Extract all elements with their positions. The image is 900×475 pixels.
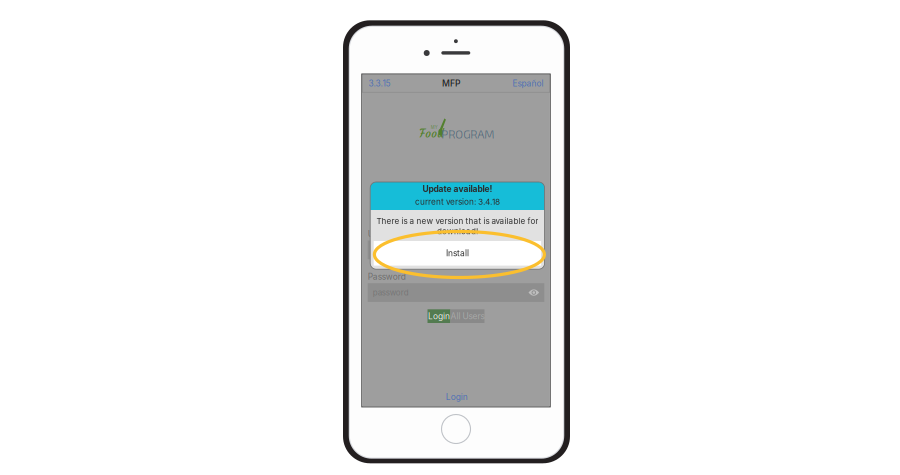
staticText: All Users — [450, 311, 484, 321]
button[interactable]: Español — [512, 75, 543, 92]
staticText: 3.3.15 — [368, 78, 390, 88]
staticText: Password — [368, 272, 406, 282]
staticText: Login — [446, 392, 468, 402]
staticText: There is a new version that is available… — [376, 216, 538, 226]
staticText: Español — [512, 78, 543, 88]
button[interactable]: Login — [427, 309, 450, 323]
button[interactable]: Login — [434, 390, 480, 403]
button[interactable]: Install — [374, 241, 541, 266]
staticText: Food — [419, 127, 443, 141]
staticText: Login — [428, 311, 450, 321]
staticText: PROGRAM — [441, 127, 494, 141]
staticText: MY — [431, 125, 438, 130]
button[interactable]: All Users — [450, 309, 484, 323]
button[interactable]: 3.3.15 — [368, 75, 390, 92]
staticText: Update available! — [422, 184, 492, 194]
staticText: Install — [446, 248, 469, 258]
staticText: MFP — [442, 78, 461, 89]
staticText: download! — [437, 226, 478, 236]
staticText: Username — [368, 229, 408, 239]
staticText: current version: 3.4.18 — [415, 197, 500, 207]
staticText: username — [373, 245, 411, 255]
staticText: password — [373, 288, 409, 297]
